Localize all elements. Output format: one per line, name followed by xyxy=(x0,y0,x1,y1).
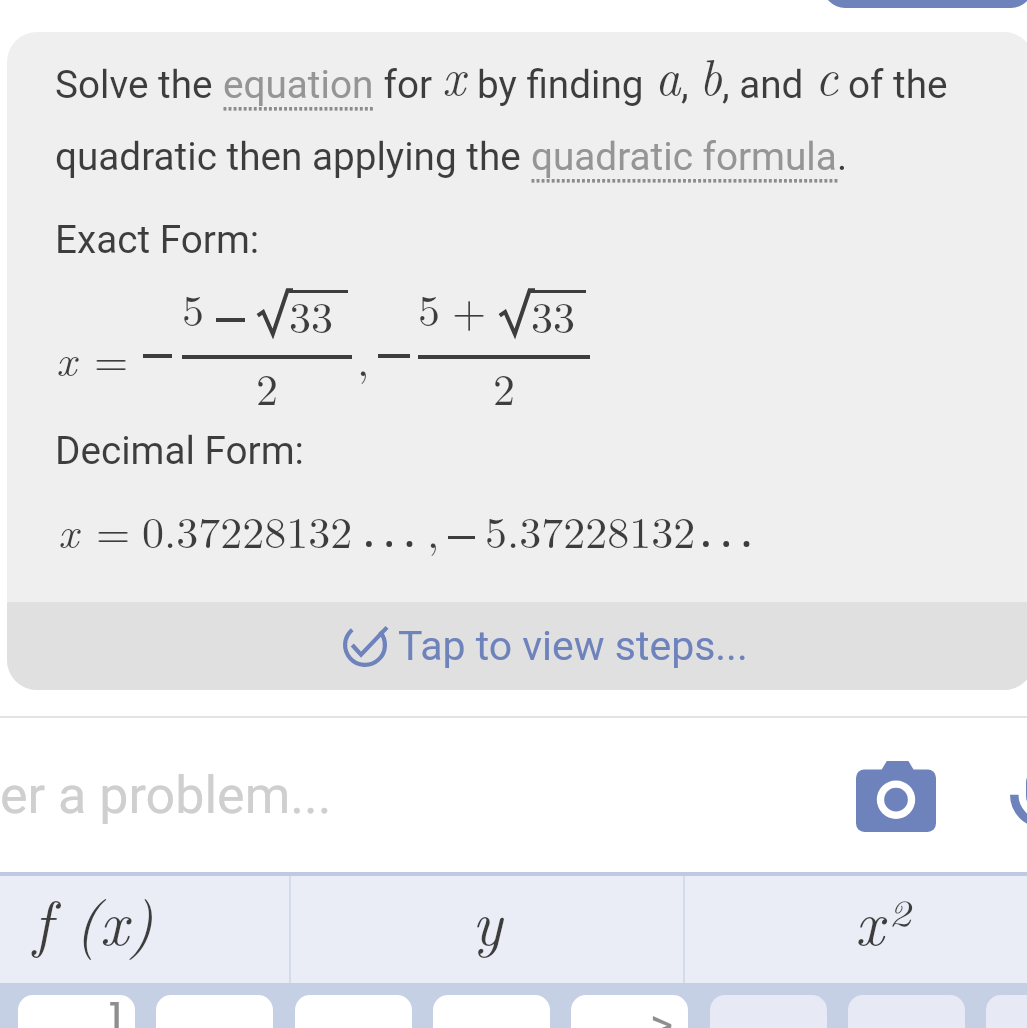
staticText: x xyxy=(56,326,77,388)
staticText: c xyxy=(815,39,838,110)
button[interactable] xyxy=(986,995,1027,1028)
staticText: 33 xyxy=(531,283,575,345)
staticText: 0.37228132 xyxy=(142,498,353,560)
staticText: equation xyxy=(223,62,374,107)
button[interactable] xyxy=(18,995,135,1028)
staticText: b xyxy=(699,39,722,110)
staticText: x xyxy=(442,39,466,110)
staticText: > xyxy=(650,999,674,1028)
staticText: y xyxy=(472,875,503,963)
staticText: 5.37228132 xyxy=(485,498,696,560)
staticText: 33 xyxy=(289,283,333,345)
staticText: , xyxy=(427,498,440,560)
staticText: , xyxy=(681,62,689,107)
staticText: er a problem... xyxy=(0,765,332,826)
button[interactable] xyxy=(156,995,273,1028)
staticText: ] xyxy=(110,997,123,1028)
button[interactable] xyxy=(710,995,827,1028)
button[interactable] xyxy=(433,995,550,1028)
button[interactable]: Solve xyxy=(823,0,1027,8)
button[interactable]: Tap to view steps... xyxy=(7,602,1027,690)
staticText: Solve the xyxy=(55,62,223,107)
button[interactable]: f (x) xyxy=(0,872,290,983)
staticText: quadratic then applying the xyxy=(55,134,531,179)
staticText: 2 xyxy=(493,355,515,417)
staticText: f (x) xyxy=(33,875,154,963)
staticText: Exact Form: xyxy=(55,217,260,262)
staticText: a xyxy=(655,39,681,110)
staticText: x xyxy=(58,498,79,560)
staticText: = xyxy=(96,498,131,560)
staticText: for xyxy=(374,62,433,107)
staticText: of the xyxy=(848,62,948,107)
staticText: , xyxy=(357,326,370,388)
button[interactable] xyxy=(571,995,688,1028)
button[interactable]: x² xyxy=(684,872,1027,983)
button[interactable]: y xyxy=(290,872,684,983)
button[interactable]: Camera xyxy=(856,761,936,832)
staticText: quadratic formula xyxy=(531,134,837,179)
staticText: , and xyxy=(722,62,804,107)
staticText: 5 xyxy=(418,276,440,338)
button[interactable] xyxy=(295,995,412,1028)
staticText: = xyxy=(94,326,129,388)
staticText: + xyxy=(452,277,487,339)
staticText: 2 xyxy=(256,355,278,417)
button[interactable] xyxy=(848,995,965,1028)
staticText: 5 xyxy=(182,276,204,338)
staticText: by finding xyxy=(477,62,644,107)
staticText: . xyxy=(837,134,848,179)
button[interactable]: Voice input xyxy=(1007,766,1027,844)
staticText: Decimal Form: xyxy=(55,428,304,473)
staticText: x² xyxy=(855,875,908,963)
staticText: Tap to view steps... xyxy=(398,622,748,670)
